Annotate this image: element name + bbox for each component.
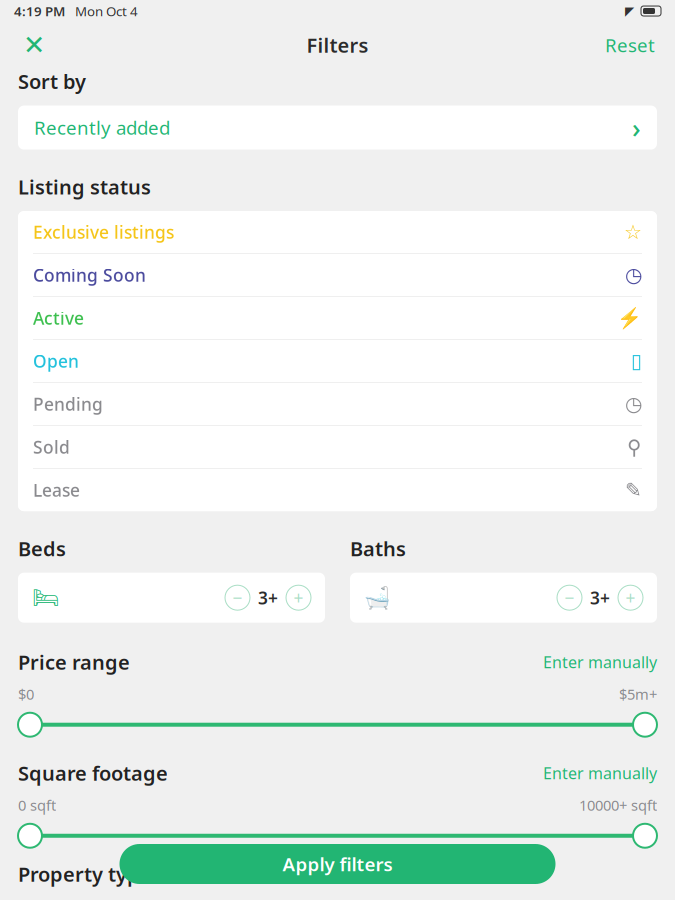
button[interactable]: Enter manually xyxy=(543,762,657,784)
staticText: Price range xyxy=(18,649,130,675)
staticText: ◤ xyxy=(625,4,634,18)
staticText: Lease xyxy=(33,479,80,502)
staticText: Exclusive listings xyxy=(33,221,174,244)
staticText: Open xyxy=(33,350,79,373)
button[interactable]: Reset xyxy=(599,25,661,65)
staticText: Mon Oct 4 xyxy=(75,2,138,20)
staticText: 3+ xyxy=(258,586,278,609)
staticText: › xyxy=(632,110,641,145)
staticText: Reset xyxy=(605,33,655,57)
staticText: + xyxy=(293,586,303,609)
staticText: + xyxy=(625,586,635,609)
button[interactable]: Close xyxy=(14,25,54,65)
staticText: Baths xyxy=(350,535,406,562)
staticText: Apply filters xyxy=(282,852,392,876)
staticText: − xyxy=(232,586,242,609)
staticText: ✕ xyxy=(23,30,45,60)
button[interactable]: Enter manually xyxy=(543,651,657,672)
staticText: 4:19 PM xyxy=(14,2,65,20)
staticText: Filters xyxy=(306,32,368,58)
staticText: − xyxy=(564,586,574,609)
button[interactable]: Recently added xyxy=(18,106,657,150)
staticText: ⚡ xyxy=(617,307,642,330)
staticText: ⚲ xyxy=(627,436,642,458)
staticText: Listing status xyxy=(18,174,151,200)
button[interactable]: Increase Baths xyxy=(618,585,643,610)
staticText: 10000+ sqft xyxy=(579,795,657,815)
staticText: Pending xyxy=(33,393,103,416)
staticText: Sold xyxy=(33,436,70,459)
staticText: Active xyxy=(33,307,84,330)
staticText: ☆ xyxy=(624,221,642,243)
staticText: Enter manually xyxy=(543,762,657,784)
button[interactable]: Apply filters xyxy=(119,844,555,884)
staticText: Recently added xyxy=(34,115,170,140)
button[interactable]: Increase Beds xyxy=(286,585,311,610)
staticText: $5m+ xyxy=(619,684,657,704)
button[interactable]: Pending xyxy=(18,383,657,426)
staticText: Coming Soon xyxy=(33,264,146,287)
staticText: 🛏 xyxy=(32,585,59,610)
button[interactable]: Exclusive listings xyxy=(18,211,657,254)
button[interactable]: Active xyxy=(18,297,657,340)
staticText: ✎ xyxy=(625,479,642,501)
staticText: 🛁 xyxy=(364,585,391,610)
staticText: ◷ xyxy=(625,393,642,415)
staticText: Sort by xyxy=(18,68,86,95)
staticText: 3+ xyxy=(590,586,610,609)
staticText: ▯ xyxy=(631,350,642,372)
staticText: Square footage xyxy=(18,760,168,786)
button[interactable]: Open xyxy=(18,340,657,383)
staticText: ◷ xyxy=(625,264,642,286)
staticText: Enter manually xyxy=(543,651,657,672)
button[interactable]: Coming Soon xyxy=(18,254,657,297)
button[interactable]: Decrease Beds xyxy=(225,585,250,610)
staticText: Property type xyxy=(18,861,152,887)
button[interactable]: Sold xyxy=(18,426,657,469)
staticText: $0 xyxy=(18,684,34,704)
button[interactable]: Lease xyxy=(18,469,657,511)
staticText: Beds xyxy=(18,535,66,562)
staticText: 0 sqft xyxy=(18,795,56,815)
button[interactable]: Decrease Baths xyxy=(557,585,582,610)
